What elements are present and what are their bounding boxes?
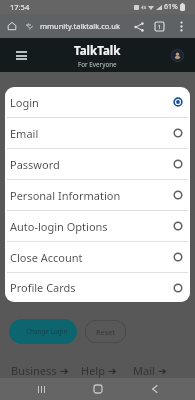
button[interactable]: Help [81, 363, 116, 378]
button[interactable]: Back [143, 378, 165, 400]
button[interactable]: Login [5, 87, 190, 118]
staticText: 61% [164, 2, 178, 12]
staticText: Change Login [26, 327, 68, 336]
staticText: Reset [96, 327, 116, 337]
staticText: Auto-login Options [10, 219, 108, 234]
staticText: Login [10, 95, 39, 110]
staticText: Profile Cards [10, 280, 76, 295]
button[interactable]: Personal Information [5, 180, 190, 211]
button[interactable]: Change Login [9, 319, 77, 344]
staticText: Personal Information [10, 188, 121, 203]
button[interactable]: Home [8, 22, 16, 30]
staticText: Help [81, 363, 105, 378]
button[interactable]: Tabs [155, 22, 164, 31]
button[interactable]: Mail [133, 363, 166, 378]
staticText: Close Account [10, 250, 83, 265]
button[interactable]: Home [87, 378, 109, 400]
staticText: Email [10, 126, 39, 141]
button[interactable]: Password [5, 149, 190, 180]
button[interactable]: Reset [85, 320, 126, 343]
staticText: mmunity.talktalk.co.uk [40, 21, 120, 31]
staticText: Password [10, 157, 60, 172]
staticText: Mail [133, 363, 155, 378]
button[interactable]: Close Account [5, 242, 190, 273]
staticText: TalkTalk [74, 43, 121, 59]
staticText: For Everyone [78, 60, 117, 69]
button[interactable]: Recents [30, 378, 52, 400]
button[interactable]: More options [180, 21, 183, 32]
staticText: Business [11, 363, 57, 378]
button[interactable]: Account [171, 49, 184, 62]
button[interactable]: Menu [16, 51, 27, 60]
staticText: 17:54 [10, 2, 30, 12]
button[interactable]: Business [11, 363, 68, 378]
button[interactable]: Share [134, 22, 144, 32]
button[interactable]: Profile Cards [5, 273, 190, 302]
button[interactable]: Auto-login Options [5, 211, 190, 242]
button[interactable]: Email [5, 118, 190, 149]
staticText: 1 [158, 23, 162, 30]
